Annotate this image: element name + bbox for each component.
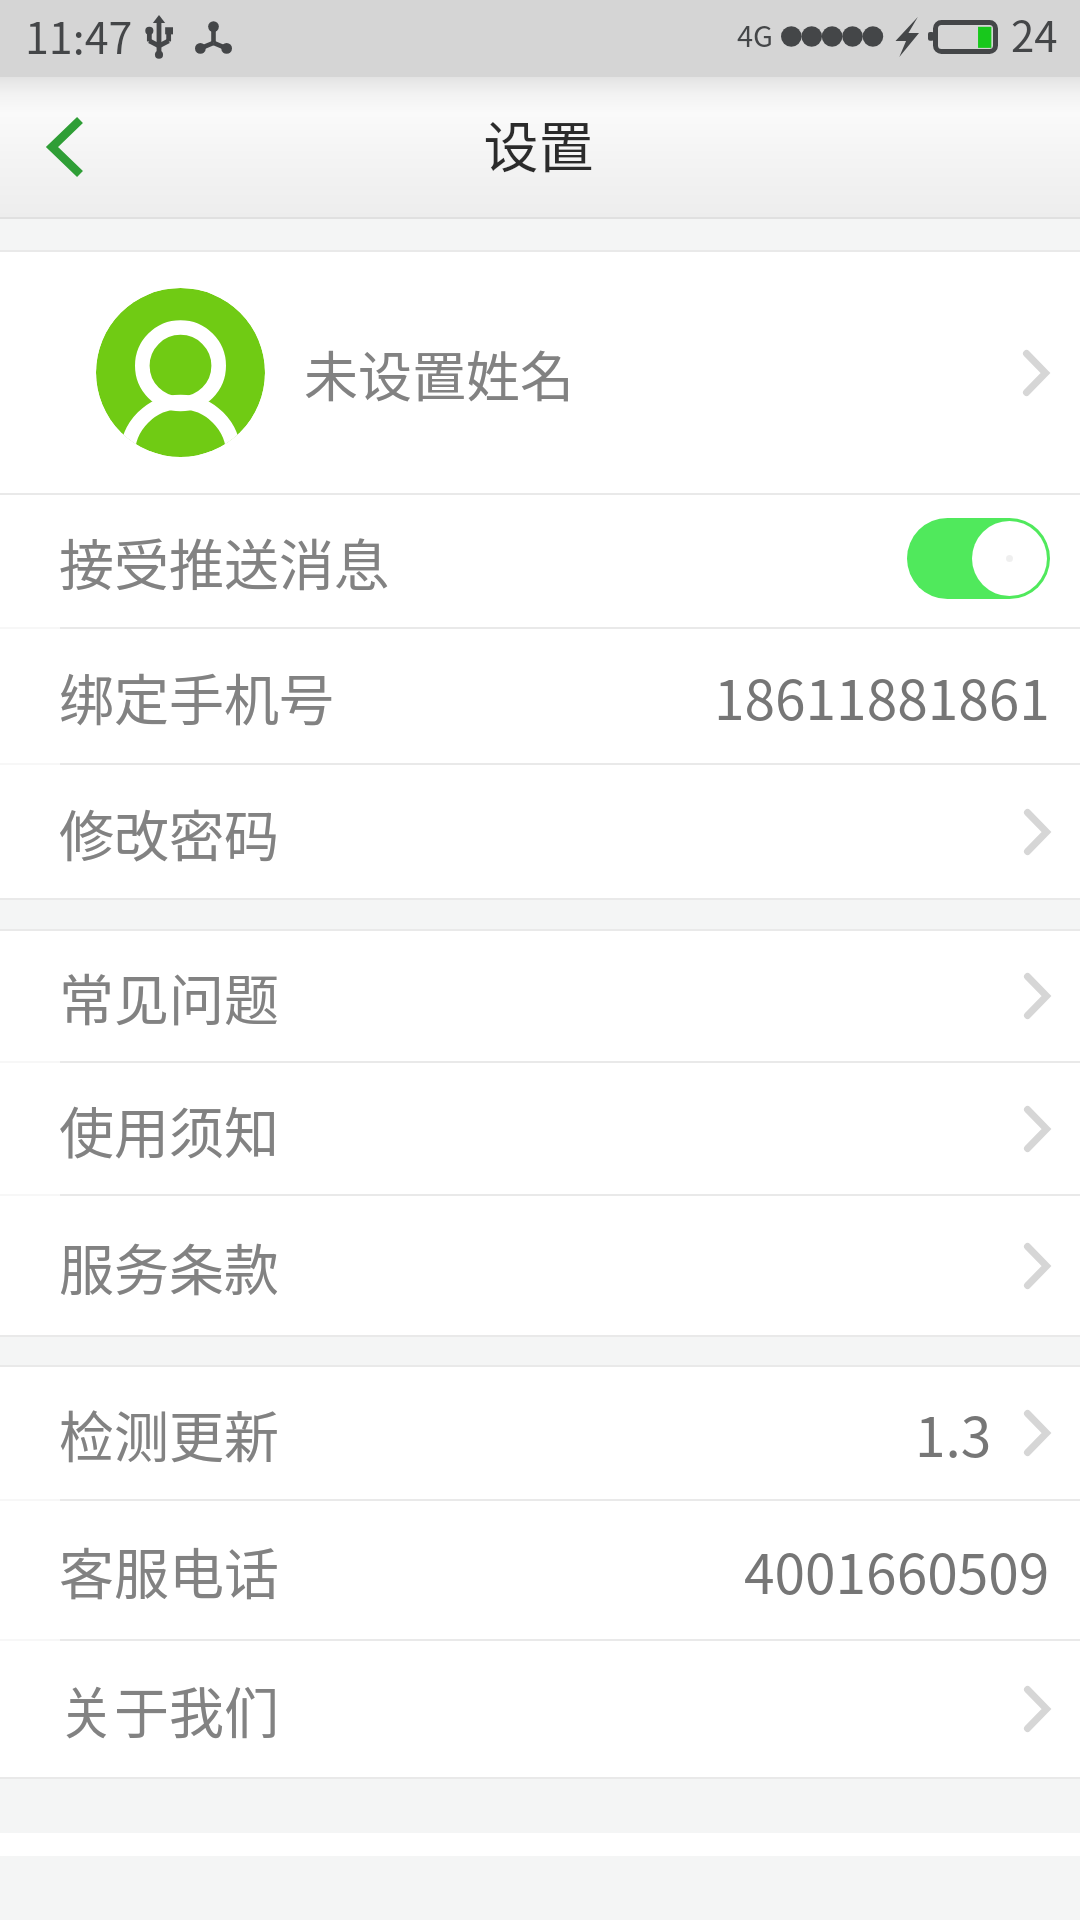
button[interactable]: 检测更新 bbox=[0, 1367, 1080, 1499]
button[interactable]: 服务条款 bbox=[0, 1196, 1080, 1335]
staticText: 服务条款 bbox=[59, 1226, 280, 1306]
staticText: 客服电话 bbox=[59, 1530, 280, 1610]
staticText: 关于我们 bbox=[59, 1669, 280, 1749]
button[interactable]: Back bbox=[0, 77, 130, 217]
staticText: 绑定手机号 bbox=[59, 656, 335, 736]
staticText: 接受推送消息 bbox=[59, 521, 390, 601]
staticText: 11:47 bbox=[25, 4, 133, 66]
staticText: 18611881861 bbox=[714, 656, 1050, 736]
staticText: 4001660509 bbox=[744, 1530, 1050, 1610]
button[interactable]: 接受推送消息 bbox=[0, 495, 1080, 627]
button[interactable]: 常见问题 bbox=[0, 931, 1080, 1061]
staticText: 4G bbox=[737, 13, 774, 55]
staticText: 常见问题 bbox=[59, 956, 280, 1036]
button[interactable]: Toggle push notifications bbox=[907, 518, 1050, 599]
button[interactable]: 使用须知 bbox=[0, 1063, 1080, 1194]
button[interactable]: 修改密码 bbox=[0, 765, 1080, 898]
staticText: 设置 bbox=[483, 103, 594, 183]
staticText: 1.3 bbox=[915, 1393, 992, 1473]
staticText: 未设置姓名 bbox=[304, 334, 574, 412]
staticText: 24 bbox=[1011, 3, 1058, 64]
staticText: 修改密码 bbox=[59, 792, 280, 872]
staticText: 检测更新 bbox=[59, 1393, 280, 1473]
button[interactable]: 未设置姓名 bbox=[0, 252, 1080, 493]
staticText: 使用须知 bbox=[59, 1089, 280, 1169]
button[interactable]: 绑定手机号 bbox=[0, 629, 1080, 763]
button[interactable]: 客服电话 bbox=[0, 1501, 1080, 1639]
button[interactable]: 关于我们 bbox=[0, 1641, 1080, 1777]
